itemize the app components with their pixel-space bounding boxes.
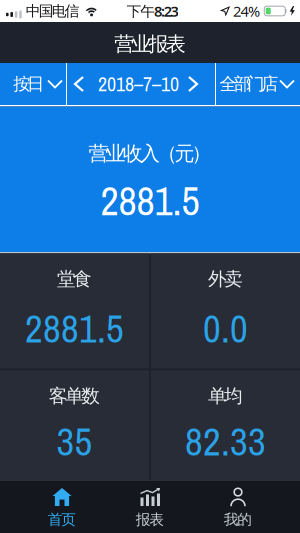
button[interactable]: 按日 <box>0 63 66 105</box>
staticText: 营业收入（元） <box>88 141 212 166</box>
staticText: 中国电信 <box>26 2 80 20</box>
staticText: 堂食 <box>57 267 92 290</box>
staticText: 营业报表 <box>114 32 186 56</box>
staticText: 35 <box>56 415 92 467</box>
button[interactable]: 我的 <box>194 482 282 532</box>
staticText: 单均 <box>208 384 243 407</box>
button[interactable]: 全部门店 <box>216 63 300 105</box>
staticText: 82.33 <box>185 415 266 467</box>
staticText: 我的 <box>224 510 252 528</box>
staticText: 2018–7–10 <box>98 70 179 97</box>
staticText: 客单数 <box>49 384 100 407</box>
staticText: 首页 <box>48 510 76 528</box>
button[interactable]: 前一天 <box>67 63 91 105</box>
staticText: 2881.5 <box>100 174 199 228</box>
staticText: 0.0 <box>203 302 248 354</box>
button[interactable]: 首页 <box>18 482 106 532</box>
staticText: 全部门店 <box>220 73 278 95</box>
button[interactable]: 2018–7–10 <box>93 63 188 105</box>
staticText: 下午8:23 <box>126 1 178 21</box>
staticText: 报表 <box>136 510 164 528</box>
staticText: 按日 <box>13 73 44 95</box>
button[interactable]: 报表 <box>106 482 194 532</box>
staticText: 24% <box>233 1 260 21</box>
staticText: 2881.5 <box>25 302 124 354</box>
staticText: 外卖 <box>208 267 243 290</box>
button[interactable]: 后一天 <box>181 63 205 105</box>
